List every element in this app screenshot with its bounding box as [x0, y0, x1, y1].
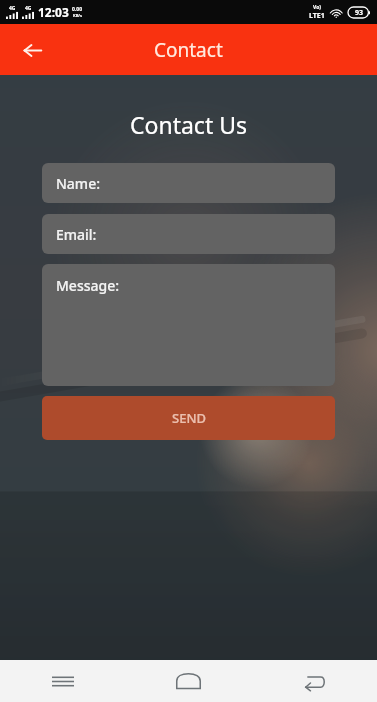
button[interactable]: Message: [42, 264, 335, 386]
staticText: 0.00 [72, 6, 82, 13]
button[interactable]: Back [251, 660, 377, 702]
staticText: Contact Us [0, 109, 377, 140]
button[interactable]: Name: [42, 163, 335, 203]
staticText: LTE1 [309, 11, 325, 21]
button[interactable]: SEND [42, 396, 335, 440]
staticText: Vo) [313, 4, 321, 11]
staticText: 4G [25, 5, 32, 12]
button[interactable]: Email: [42, 214, 335, 254]
staticText: Name: [56, 174, 100, 193]
button[interactable]: Home [125, 660, 251, 702]
button[interactable]: Recent apps [0, 660, 125, 702]
button[interactable]: Back [10, 28, 54, 72]
staticText: KB/s [73, 13, 82, 18]
staticText: Email: [56, 225, 97, 244]
staticText: 93 [355, 8, 364, 18]
staticText: Contact [154, 37, 223, 63]
staticText: 12:03 [38, 4, 69, 20]
staticText: 4G [9, 5, 16, 12]
staticText: SEND [172, 409, 206, 427]
staticText: Message: [56, 276, 120, 295]
